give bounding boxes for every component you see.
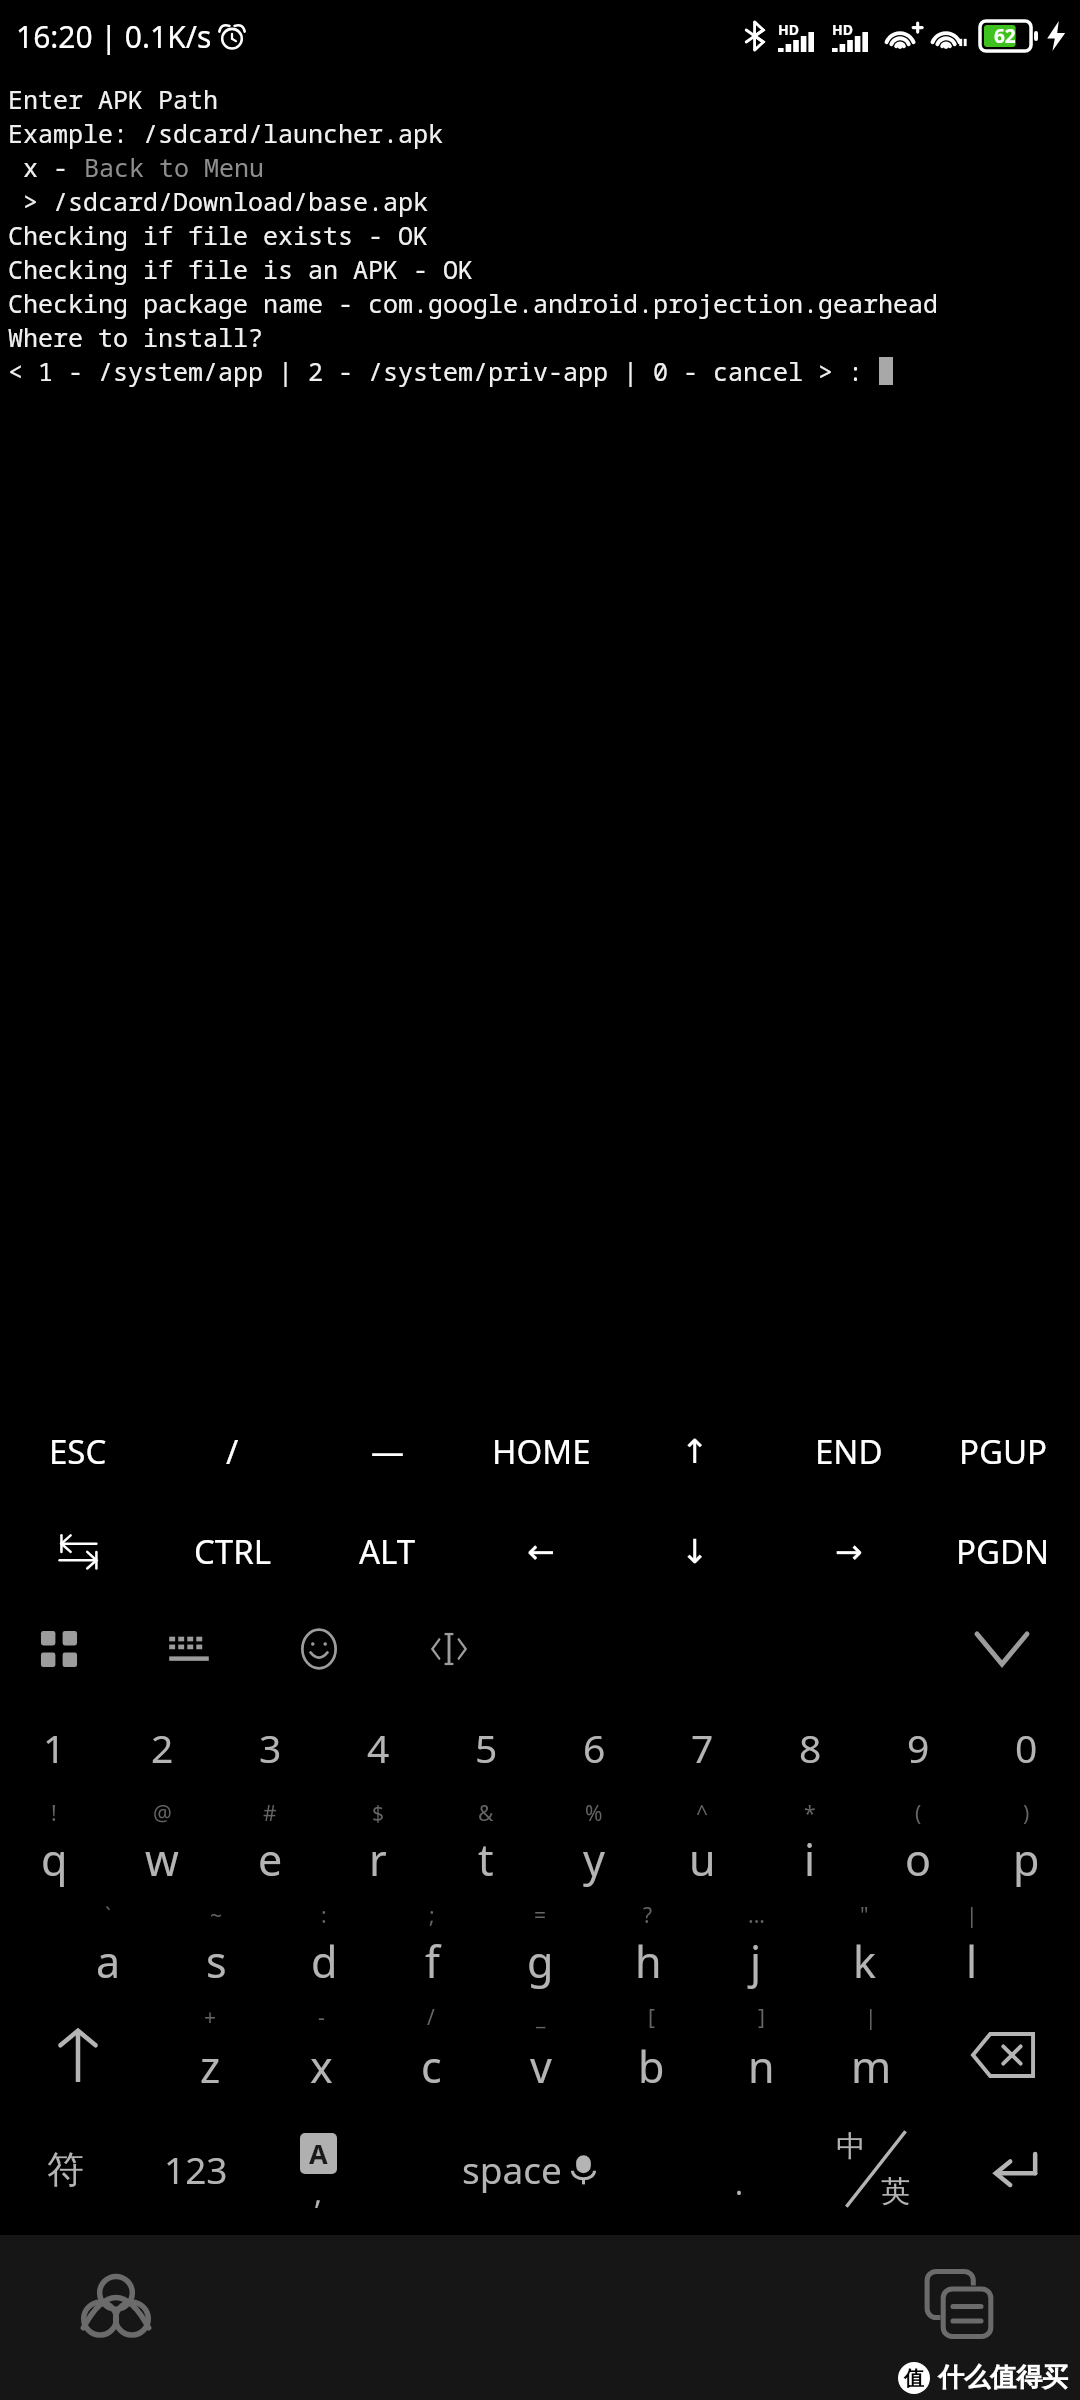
button[interactable]: & [432, 1797, 540, 1899]
staticText: ~ [210, 1901, 223, 1930]
button[interactable]: ! [0, 1797, 108, 1899]
button[interactable]: ; [378, 1899, 486, 2001]
button[interactable]: → [772, 1501, 926, 1601]
button[interactable]: space [375, 2109, 682, 2229]
staticText: m [851, 2037, 892, 2096]
button[interactable]: | [816, 2001, 926, 2109]
button[interactable]: ESC [0, 1401, 155, 1501]
staticText: v [530, 2037, 552, 2096]
staticText: ← [527, 1532, 555, 1570]
staticText: 4 [367, 1721, 390, 1774]
button[interactable]: 1 [0, 1697, 108, 1797]
button[interactable]: — [310, 1401, 464, 1501]
staticText: | [865, 2003, 877, 2032]
button[interactable]: 9 [864, 1697, 972, 1797]
button[interactable]: ] [706, 2001, 816, 2109]
button[interactable]: / [376, 2001, 486, 2109]
staticText: / [226, 1429, 239, 1474]
button[interactable]: 4 [324, 1697, 432, 1797]
staticText: = [534, 1901, 547, 1930]
button[interactable]: ↓ [618, 1501, 772, 1601]
button[interactable]: ^ [648, 1797, 756, 1899]
button[interactable]: _ [486, 2001, 596, 2109]
staticText: Where to install? [8, 320, 264, 354]
staticText: Back to Menu [84, 150, 265, 184]
button[interactable]: 0 [972, 1697, 1080, 1797]
button[interactable]: ~ [162, 1899, 270, 2001]
button[interactable]: @ [108, 1797, 216, 1899]
button[interactable]: / [155, 1401, 310, 1501]
staticText: * [804, 1799, 816, 1828]
staticText: Checking if file is an APK - OK [8, 252, 474, 286]
staticText: 什么值得买 [938, 2361, 1068, 2394]
button[interactable]: Switch Chinese English [796, 2109, 949, 2229]
button[interactable]: = [486, 1899, 594, 2001]
button[interactable]: A [261, 2109, 375, 2229]
button[interactable]: # [216, 1797, 324, 1899]
button[interactable]: Edit text [412, 1612, 486, 1686]
button[interactable]: $ [324, 1797, 432, 1899]
button[interactable]: Tab [0, 1501, 155, 1601]
staticText: r [369, 1830, 387, 1889]
staticText: _ [536, 2003, 546, 2032]
staticText: HOME [492, 1429, 591, 1474]
button[interactable]: Keyboard layout [152, 1612, 226, 1686]
button[interactable]: . [682, 2109, 796, 2229]
staticText: y [583, 1830, 605, 1889]
staticText: & [478, 1799, 494, 1828]
button[interactable]: 3 [216, 1697, 324, 1797]
staticText: x [310, 2037, 333, 2096]
staticText: — [371, 1429, 404, 1474]
button[interactable]: PGDN [926, 1501, 1080, 1601]
button[interactable]: Enter [949, 2109, 1080, 2229]
button[interactable]: HOME [464, 1401, 618, 1501]
staticText: , [314, 2172, 323, 2213]
staticText: > /sdcard/Download/base.apk [8, 184, 429, 218]
button[interactable]: Backspace [926, 2001, 1080, 2109]
button[interactable]: ) [972, 1797, 1080, 1899]
button[interactable]: % [540, 1797, 648, 1899]
button[interactable]: ← [464, 1501, 618, 1601]
button[interactable]: Input method [66, 2255, 166, 2355]
button[interactable]: Apps [22, 1612, 96, 1686]
button[interactable]: 6 [540, 1697, 648, 1797]
staticText: < 1 - /system/app | 2 - /system/priv-app… [8, 354, 879, 388]
button[interactable]: 8 [756, 1697, 864, 1797]
button[interactable]: 5 [432, 1697, 540, 1797]
button[interactable]: 2 [108, 1697, 216, 1797]
staticText: t [478, 1830, 494, 1889]
staticText: h [635, 1932, 662, 1991]
button[interactable]: + [155, 2001, 266, 2109]
button[interactable]: ALT [310, 1501, 464, 1601]
button[interactable]: | [918, 1899, 1026, 2001]
button[interactable]: Clipboard [910, 2255, 1010, 2355]
button[interactable]: Emoji [282, 1612, 356, 1686]
button[interactable]: Hide keyboard [960, 1607, 1044, 1691]
staticText: PGDN [956, 1529, 1050, 1574]
button[interactable]: 123 [130, 2109, 261, 2229]
button[interactable]: ↑ [618, 1401, 772, 1501]
staticText: 值 [904, 2366, 924, 2391]
button[interactable]: 7 [648, 1697, 756, 1797]
staticText: d [311, 1932, 338, 1991]
button[interactable]: [ [596, 2001, 706, 2109]
button[interactable]: ... [702, 1899, 810, 2001]
staticText: k [853, 1932, 876, 1991]
staticText: % [585, 1799, 603, 1828]
button[interactable]: " [810, 1899, 918, 2001]
button[interactable]: Shift [0, 2001, 155, 2109]
button[interactable]: * [756, 1797, 864, 1899]
staticText: HD [778, 20, 799, 39]
button[interactable]: ? [594, 1899, 702, 2001]
button[interactable]: PGUP [926, 1401, 1080, 1501]
button[interactable]: ` [54, 1899, 162, 2001]
staticText: @ [153, 1799, 172, 1828]
button[interactable]: ( [864, 1797, 972, 1899]
button[interactable]: END [772, 1401, 926, 1501]
button[interactable]: 符 [0, 2109, 130, 2229]
button[interactable]: : [270, 1899, 378, 2001]
button[interactable]: CTRL [155, 1501, 310, 1601]
staticText: p [1013, 1830, 1040, 1889]
button[interactable]: - [266, 2001, 376, 2109]
staticText: ; [429, 1901, 435, 1930]
